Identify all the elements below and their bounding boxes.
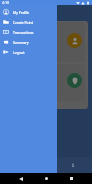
staticText: My Profile [13, 10, 30, 15]
button[interactable]: Home [41, 173, 52, 184]
staticText: 4:18 [2, 0, 9, 5]
button[interactable]: Profile tab [66, 158, 80, 172]
button[interactable]: Agents [7, 22, 85, 62]
button[interactable]: Transactions [0, 27, 57, 37]
button[interactable]: Location [7, 64, 85, 101]
button[interactable]: Summary [0, 37, 57, 47]
button[interactable]: Recents [66, 173, 77, 184]
button[interactable]: Logout [0, 47, 57, 57]
staticText: Create Point [13, 20, 34, 25]
staticText: Transactions [13, 30, 34, 35]
staticText: Logout [13, 50, 25, 55]
button[interactable]: Create Point [0, 17, 57, 27]
button[interactable]: Back [15, 173, 26, 184]
staticText: Summary [13, 40, 29, 45]
button[interactable]: My Profile [0, 7, 57, 17]
staticText: Agents [9, 53, 21, 58]
